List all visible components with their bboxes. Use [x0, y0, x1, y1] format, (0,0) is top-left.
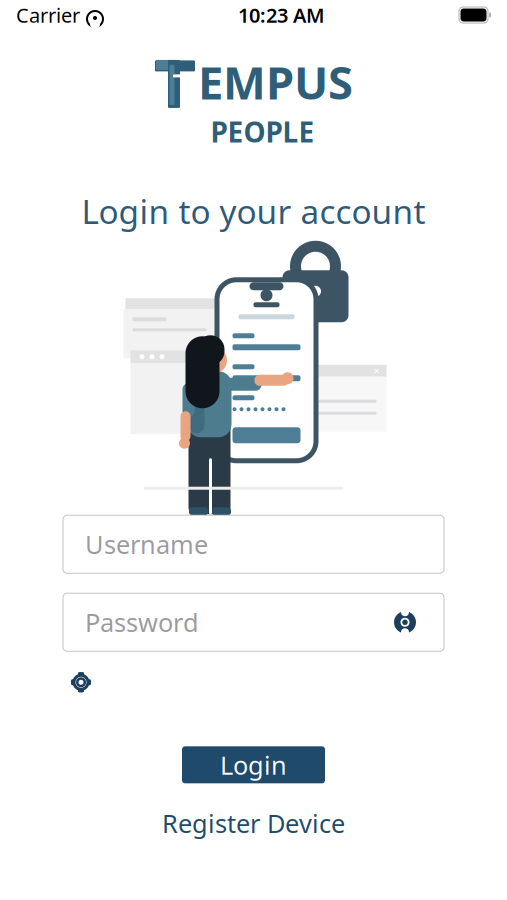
- button[interactable]: Show password: [388, 605, 422, 639]
- staticText: Carrier: [16, 2, 80, 28]
- button[interactable]: Register Device: [148, 801, 359, 845]
- staticText: Register Device: [162, 806, 345, 840]
- staticText: Username: [85, 527, 208, 561]
- staticText: 10:23 AM: [238, 2, 325, 28]
- staticText: PEOPLE: [210, 113, 314, 150]
- button[interactable]: Settings: [63, 664, 99, 700]
- staticText: Password: [85, 605, 199, 639]
- staticText: Login to your account: [81, 189, 425, 233]
- staticText: Login: [220, 748, 287, 782]
- staticText: ×: [373, 364, 379, 378]
- button[interactable]: Login: [182, 746, 325, 783]
- staticText: EMPUS: [198, 52, 353, 112]
